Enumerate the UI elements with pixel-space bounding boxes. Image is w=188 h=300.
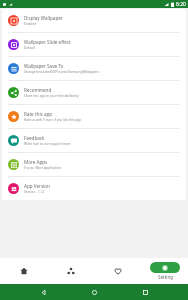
button[interactable]: App Version [2, 177, 186, 200]
button[interactable]: Recents [137, 284, 153, 300]
button[interactable]: Wallpaper Save To [2, 57, 186, 80]
button[interactable]: Setting [141, 258, 188, 284]
staticText: Recommend [24, 87, 52, 93]
staticText: Enabled [24, 22, 37, 26]
button[interactable]: Recommend [2, 81, 186, 104]
staticText: Storage/emulated/0/Pictures/SamsungWallp… [24, 70, 100, 74]
staticText: App Version [24, 183, 50, 189]
button[interactable]: Home [0, 258, 47, 284]
staticText: Rate this app [24, 111, 53, 117]
staticText: Wallpaper Save To [24, 63, 64, 69]
button[interactable]: Favorites [94, 258, 141, 284]
staticText: Display Wallpaper [24, 15, 63, 21]
staticText: Rate us with 5 stars if you like this ap… [24, 118, 82, 122]
button[interactable]: Back [35, 284, 51, 300]
staticText: Default [24, 46, 35, 50]
staticText: Share this app to your friends/family [24, 94, 79, 98]
button[interactable]: Feedback [2, 129, 186, 152]
button[interactable]: Home [86, 284, 102, 300]
staticText: Write mail to our support team [24, 142, 71, 146]
staticText: Wallpaper Slide effect [24, 39, 71, 45]
staticText: More Apps [24, 159, 48, 165]
button[interactable]: Rate this app [2, 105, 186, 128]
button[interactable]: Wallpaper Slide effect [2, 33, 186, 56]
staticText: Version - 1.12 [24, 190, 45, 194]
button[interactable]: Display Wallpaper [2, 9, 186, 32]
button[interactable]: More Apps [2, 153, 186, 176]
staticText: 6:20 [176, 1, 186, 8]
staticText: Try our More Application [24, 166, 61, 170]
staticText: Setting [158, 274, 173, 280]
staticText: Feedback [24, 135, 45, 141]
button[interactable]: Categories [47, 258, 94, 284]
